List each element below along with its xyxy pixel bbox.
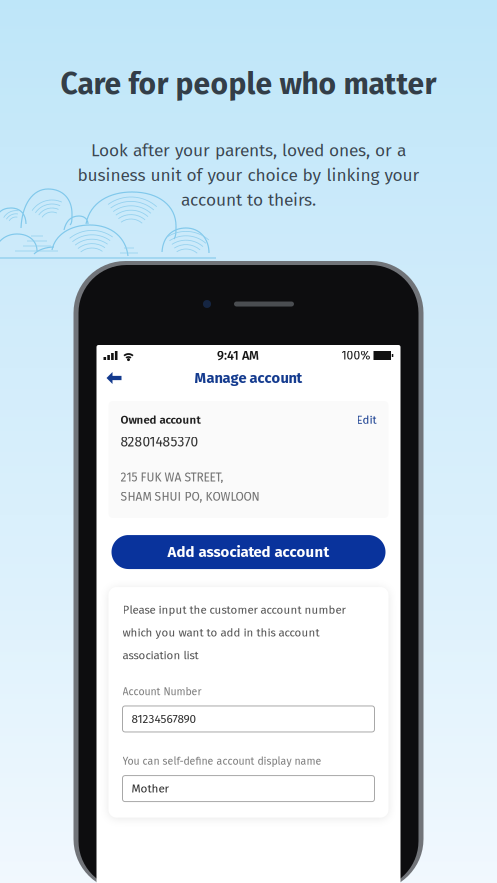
staticText: Edit [356,413,376,427]
staticText: Owned account [120,413,200,427]
staticText: association list [122,649,198,662]
staticText: You can self-define account display name [122,755,321,768]
staticText: account to theirs. [181,190,316,210]
button[interactable]: Edit [356,413,376,427]
staticText: Account Number [122,685,201,698]
button[interactable]: 81234567890 [122,706,374,732]
staticText: Care for people who matter [60,66,436,102]
staticText: Manage account [194,369,302,387]
staticText: Add associated account [167,543,329,561]
staticText: 9:41 AM [217,348,259,363]
staticText: 82801485370 [120,434,198,450]
staticText: Please input the customer account number [122,603,345,617]
button[interactable]: Add associated account [111,535,385,569]
staticText: Mother [131,782,169,796]
staticText: 81234567890 [131,712,196,726]
staticText: 215 FUK WA STREET, [120,470,223,485]
staticText: Look after your parents, loved ones, or … [91,140,406,161]
button[interactable]: Back [96,366,131,390]
staticText: which you want to add in this account [122,626,319,640]
button[interactable]: Mother [122,776,374,802]
staticText: SHAM SHUI PO, KOWLOON [120,490,259,504]
staticText: 100% [341,348,370,363]
staticText: business unit of your choice by linking … [77,165,419,186]
